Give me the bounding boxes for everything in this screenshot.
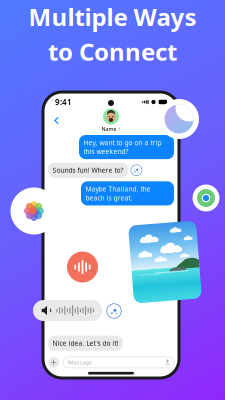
staticText: 9:41 <box>55 97 72 107</box>
staticText: iMessage <box>67 359 91 366</box>
staticText: Maybe Thailand, the beach is great. <box>85 185 150 202</box>
staticText: Name <box>101 125 116 132</box>
staticText: Multiple Ways <box>28 1 196 32</box>
staticText: to Connect <box>48 35 177 67</box>
button[interactable]: Back <box>49 111 64 129</box>
staticText: Nice idea. Let's do it! <box>52 339 118 348</box>
button[interactable]: Add attachment <box>48 357 59 368</box>
staticText: Hey, want to go on a trip this weekend? <box>83 138 161 156</box>
staticText: Sounds fun! Where to? <box>52 166 123 175</box>
button[interactable]: Name <box>101 109 121 132</box>
